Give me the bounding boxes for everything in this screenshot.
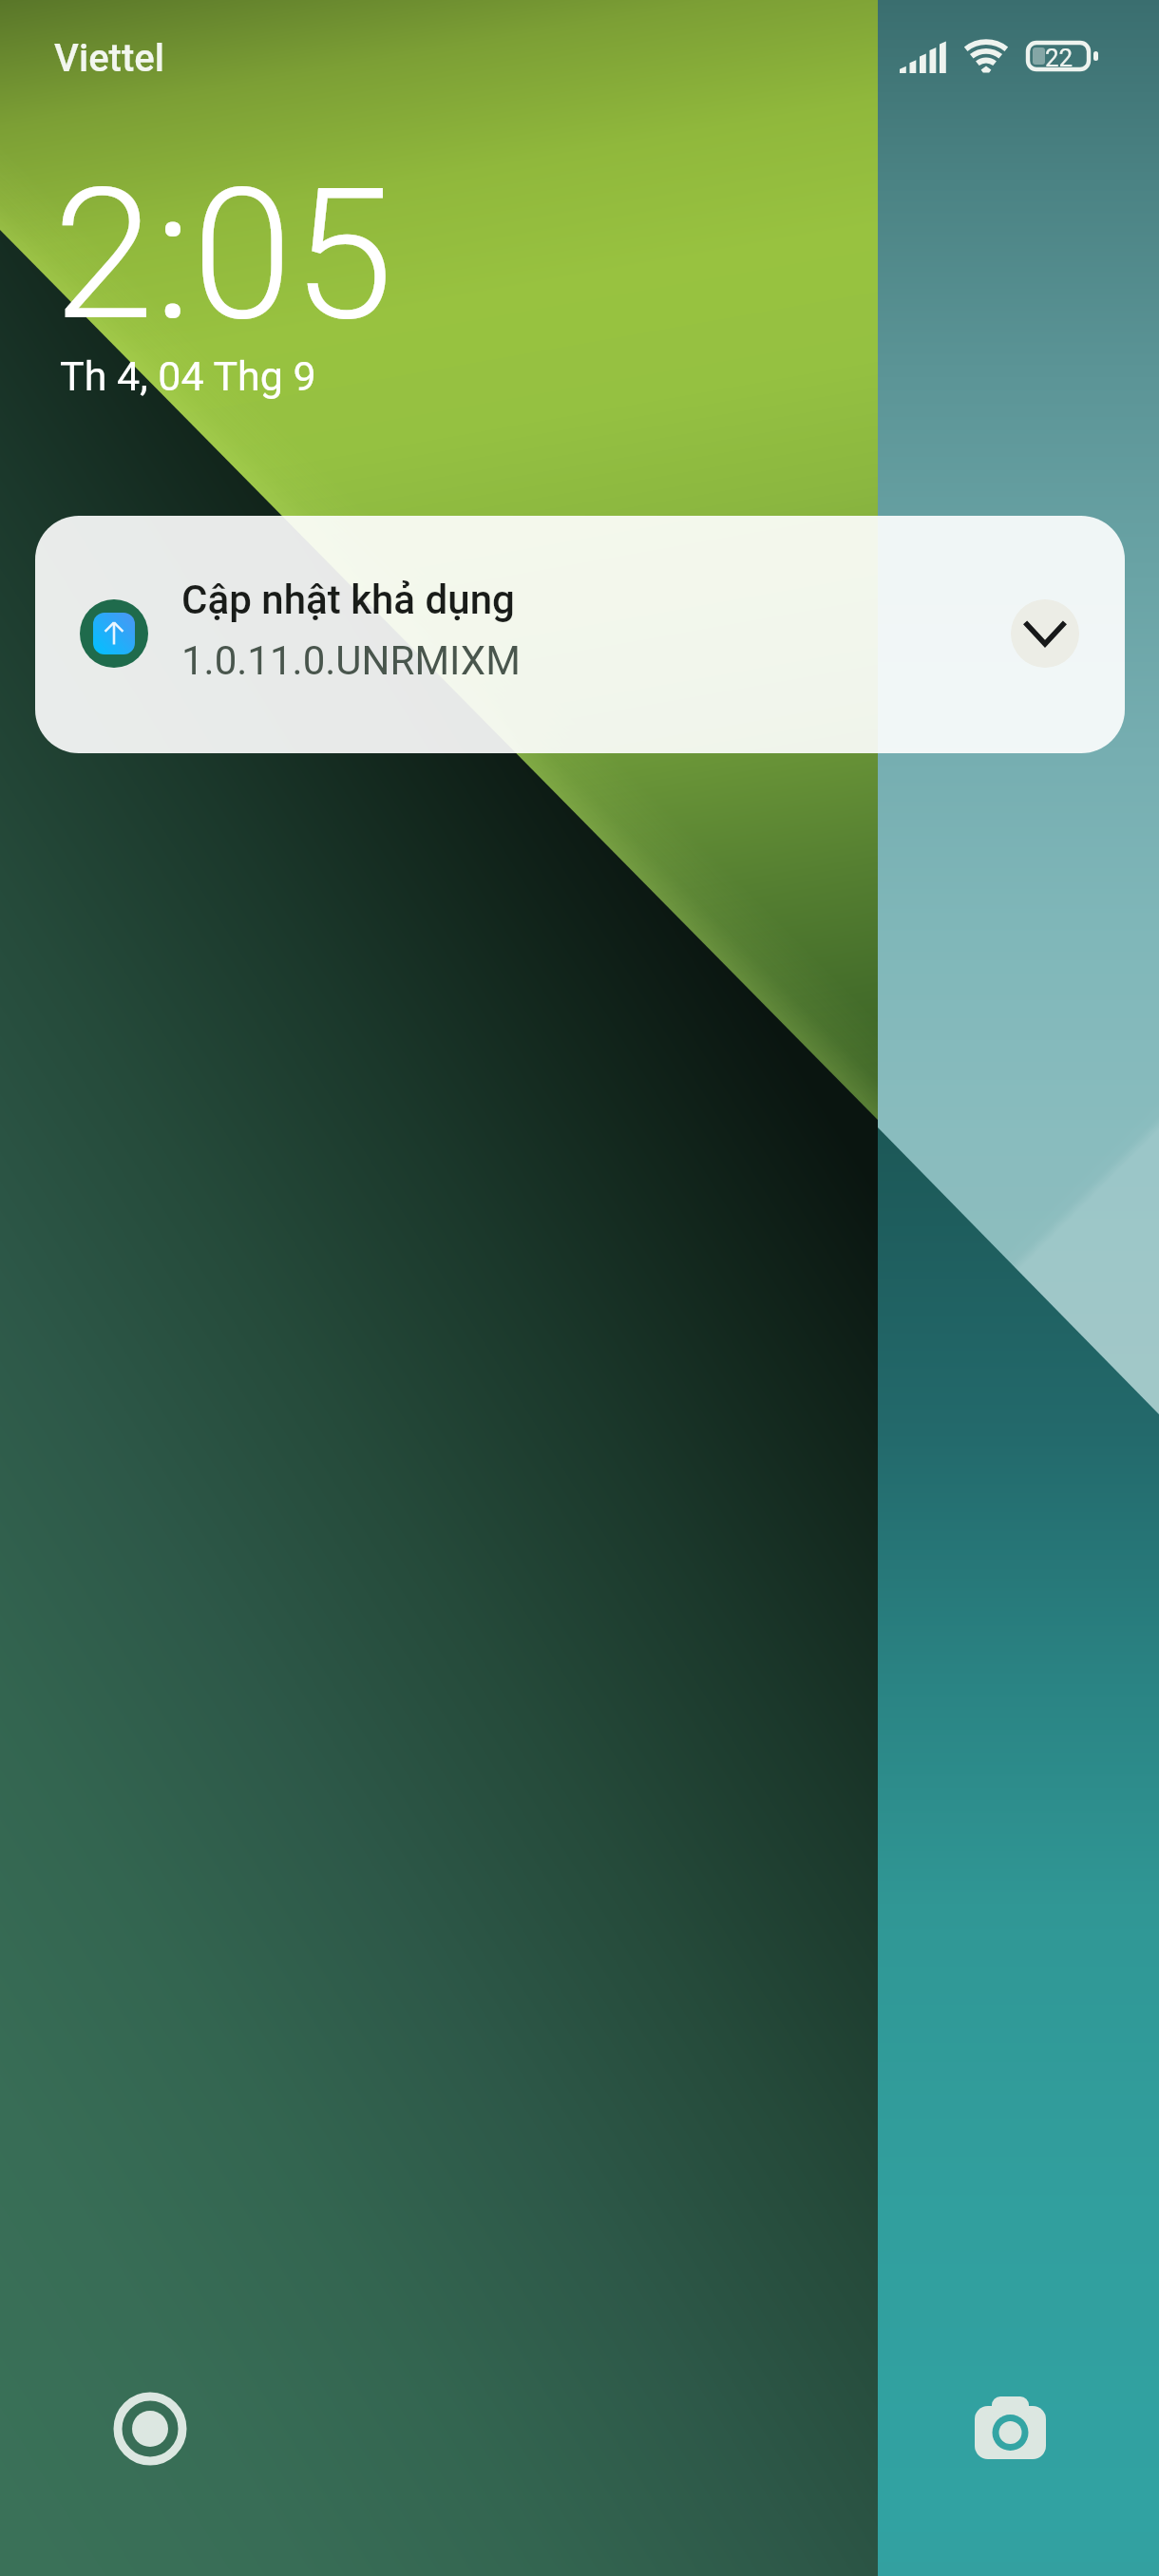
staticText: 1.0.11.0.UNRMIXM xyxy=(181,637,521,684)
button[interactable]: Expand notification xyxy=(1011,599,1079,668)
button[interactable]: Camera xyxy=(964,2387,1055,2478)
staticText: Cập nhật khả dụng xyxy=(181,577,515,623)
button[interactable]: Phone xyxy=(104,2383,196,2474)
staticText: Viettel xyxy=(54,36,164,81)
button[interactable]: Cập nhật khả dụng xyxy=(35,516,1125,753)
staticText: Th 4, 04 Thg 9 xyxy=(60,352,316,400)
staticText: 22 xyxy=(1045,44,1073,72)
staticText: 2:05 xyxy=(53,149,393,362)
